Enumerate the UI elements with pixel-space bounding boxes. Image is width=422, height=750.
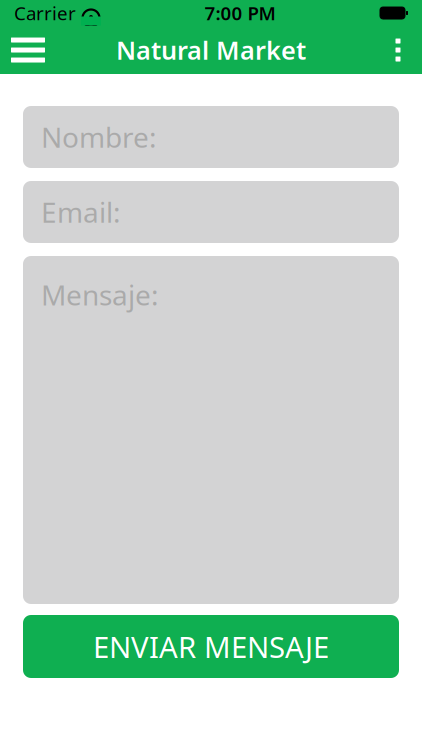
staticText: 7:00 PM — [204, 1, 275, 25]
button[interactable]: Email: — [23, 181, 399, 243]
staticText: Carrier — [14, 1, 76, 25]
staticText: Mensaje: — [41, 276, 159, 313]
button[interactable]: Nombre: — [23, 106, 399, 168]
button[interactable]: Menu — [2, 26, 54, 74]
staticText: Email: — [41, 193, 121, 231]
button[interactable]: ENVIAR MENSAJE — [23, 615, 399, 678]
staticText: Nombre: — [41, 118, 157, 156]
button[interactable]: More options — [376, 26, 420, 74]
staticText: Natural Market — [116, 33, 306, 67]
staticText: ENVIAR MENSAJE — [93, 627, 329, 666]
